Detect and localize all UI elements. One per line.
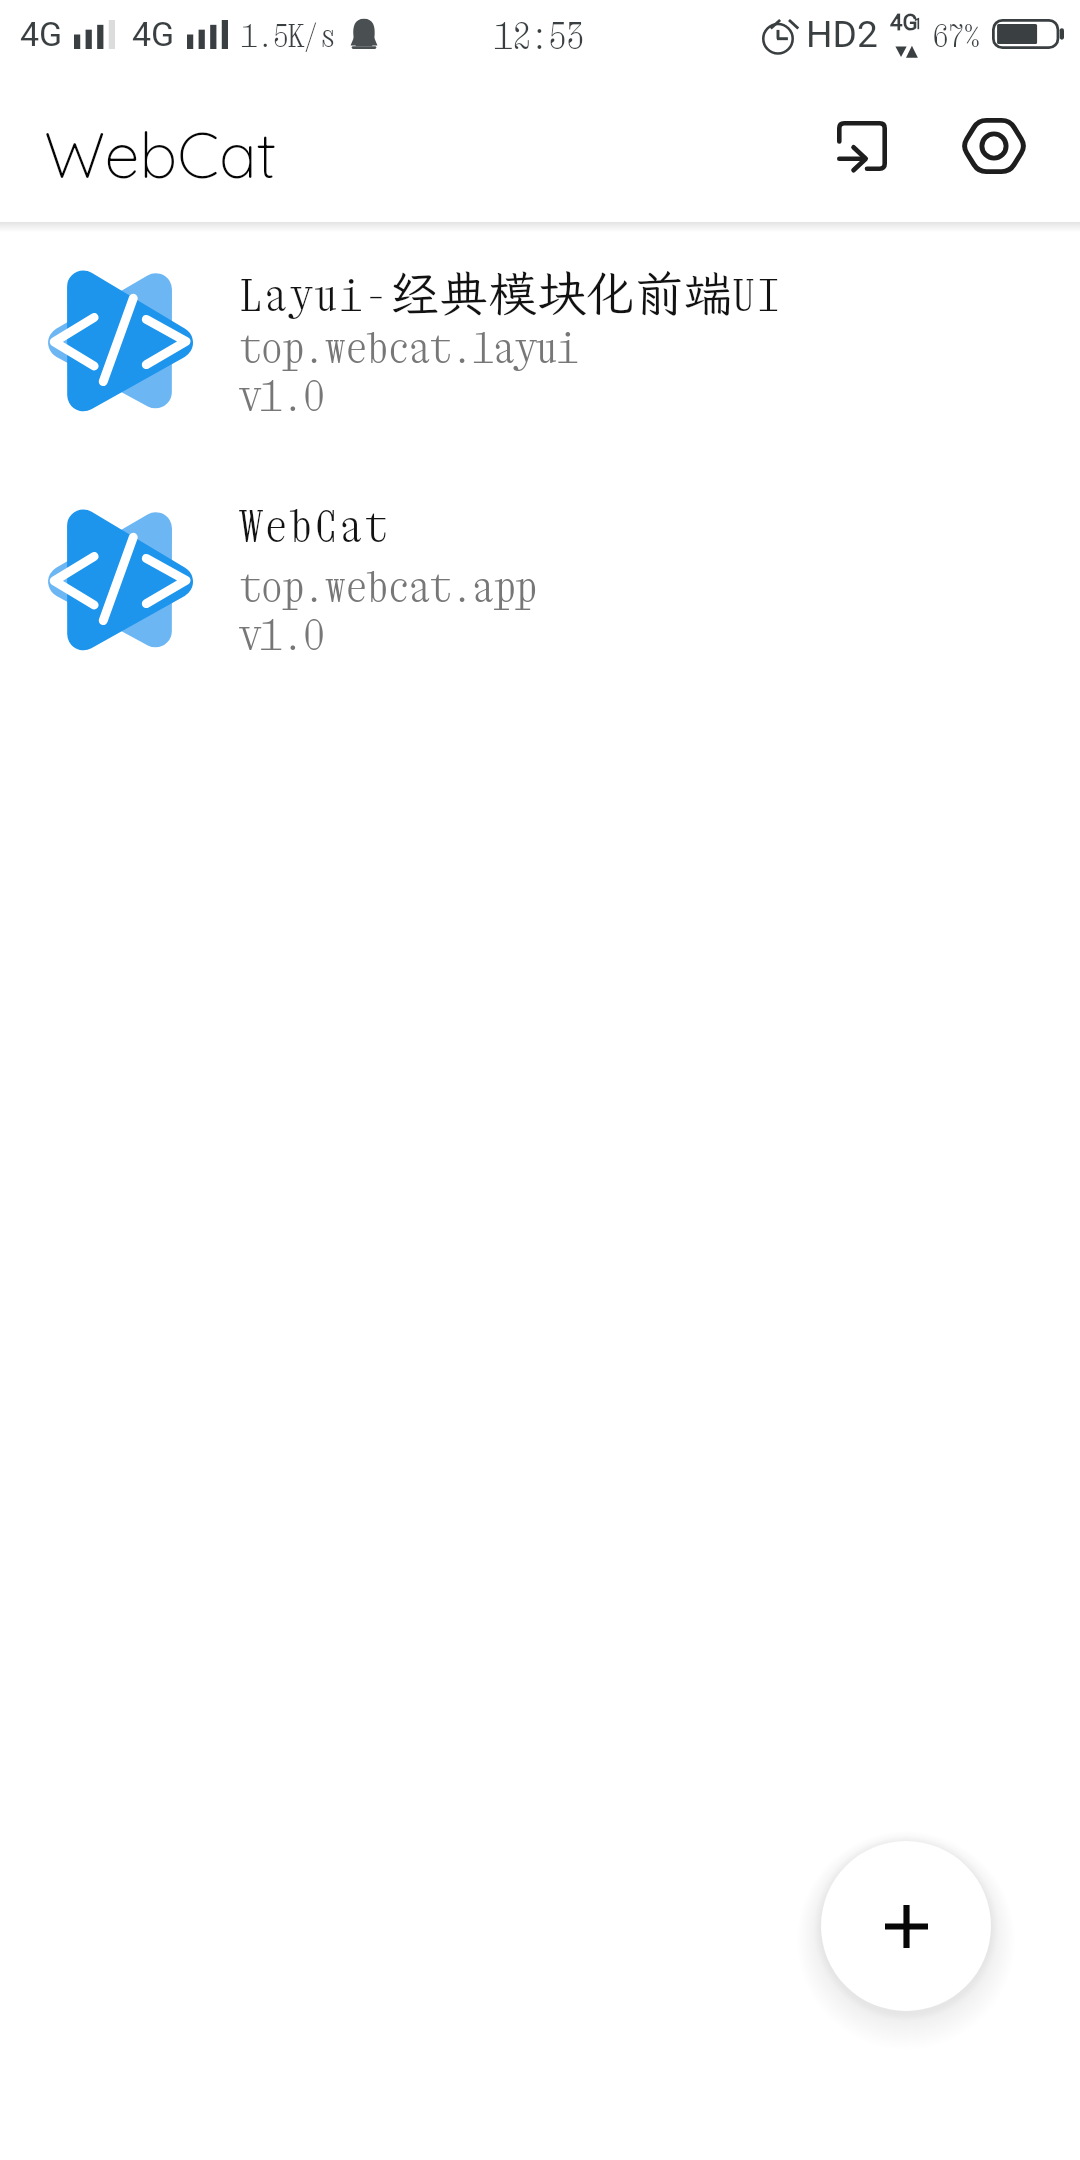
staticText: 4G (20, 14, 63, 54)
button[interactable]: Add (821, 1841, 991, 2011)
staticText: 12:53 (495, 14, 585, 56)
staticText: 67% (933, 17, 980, 54)
staticText: 4G (890, 9, 918, 35)
button[interactable]: Import (790, 74, 934, 218)
staticText: WebCat (44, 115, 277, 194)
staticText: 1.5K/s (242, 17, 335, 54)
button[interactable]: Settings (922, 74, 1066, 218)
staticText: 4G (132, 14, 175, 54)
button[interactable]: Layui-经典模块化前端UI (0, 261, 1080, 423)
staticText: WebCat (240, 500, 391, 552)
staticText: v1.0 (240, 370, 325, 420)
staticText: 1 (914, 16, 922, 32)
staticText: HD2 (806, 12, 878, 56)
staticText: top.webcat.app (240, 561, 537, 611)
staticText: v1.0 (240, 609, 325, 659)
staticText: Layui-经典模块化前端UI (240, 261, 783, 323)
button[interactable]: WebCat (0, 500, 1080, 662)
staticText: top.webcat.layui (240, 322, 579, 372)
